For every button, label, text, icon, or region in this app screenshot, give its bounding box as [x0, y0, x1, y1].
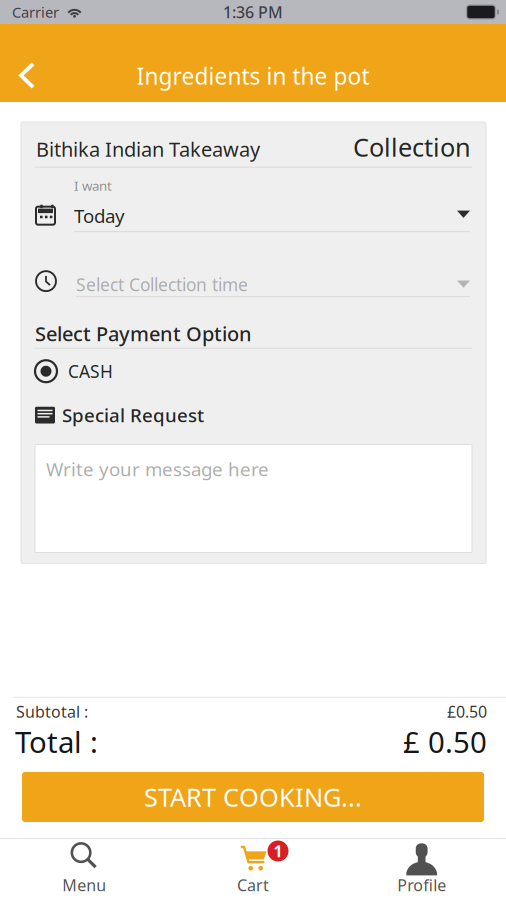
button[interactable]: START COOKING...: [22, 772, 484, 822]
staticText: 1:36 PM: [223, 1, 283, 23]
button[interactable]: Back: [0, 24, 53, 102]
button[interactable]: 1: [169, 835, 337, 900]
staticText: Today: [74, 203, 125, 228]
staticText: Subtotal :: [16, 701, 88, 722]
staticText: 1: [273, 840, 282, 862]
staticText: I want: [74, 177, 112, 194]
staticText: Special Request: [62, 403, 204, 427]
staticText: Carrier: [12, 2, 59, 22]
staticText: Profile: [397, 874, 446, 896]
staticText: Bithika Indian Takeaway: [36, 136, 260, 162]
staticText: Ingredients in the pot: [136, 61, 369, 91]
staticText: Menu: [62, 874, 106, 896]
button[interactable]: Menu: [0, 835, 169, 900]
staticText: Total :: [15, 722, 98, 761]
staticText: Select Payment Option: [35, 320, 252, 347]
staticText: START COOKING...: [144, 780, 362, 814]
staticText: £0.50: [447, 701, 487, 722]
staticText: Write your message here: [46, 456, 269, 481]
button[interactable]: Profile: [337, 835, 506, 900]
staticText: Collection: [353, 130, 471, 164]
staticText: Cart: [237, 874, 269, 896]
staticText: CASH: [68, 360, 113, 383]
staticText: Select Collection time: [76, 273, 248, 296]
staticText: £ 0.50: [403, 722, 487, 761]
